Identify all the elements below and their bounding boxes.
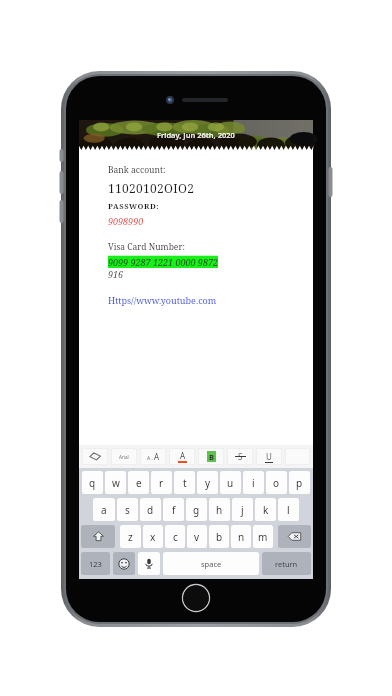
staticText: return [275,559,298,569]
button[interactable]: i [243,471,264,494]
staticText: PASSWORD: [108,201,160,211]
staticText: i [252,476,255,490]
staticText: j [241,503,244,517]
button[interactable]: z [120,525,141,548]
staticText: Https//www.youtube.com [108,294,217,306]
staticText: a [101,503,107,517]
button[interactable]: m [253,525,273,548]
staticText: g [193,503,200,517]
staticText: x [150,530,156,544]
button[interactable]: f [163,498,184,521]
button[interactable]: Space [163,552,259,575]
button[interactable]: w [105,471,126,494]
button[interactable]: Text colour [169,448,195,465]
staticText: 9098990 [108,215,144,227]
staticText: Bank account: [108,164,166,176]
staticText: h [216,503,223,517]
staticText: b [216,530,223,544]
button[interactable]: k [255,498,276,521]
staticText: ~ [151,457,154,462]
staticText: z [128,530,133,544]
button[interactable]: t [174,471,195,494]
button[interactable]: Voice input [138,552,160,575]
staticText: n [238,530,245,544]
button[interactable]: Emoji [113,552,135,575]
button[interactable]: Highlight [198,448,224,465]
button[interactable]: x [143,525,163,548]
staticText: Friday, Jun 26th, 2020 [157,130,235,140]
button[interactable]: u [220,471,241,494]
staticText: o [273,476,280,490]
staticText: space [201,559,222,569]
staticText: u [227,476,234,490]
staticText: w [112,476,120,490]
button[interactable]: v [187,525,207,548]
staticText: l [287,503,290,517]
staticText: t [183,476,187,490]
button[interactable]: o [266,471,287,494]
button[interactable]: Text size [140,448,166,465]
staticText: Arial [119,454,129,460]
button[interactable]: Return [262,552,311,575]
staticText: v [194,530,200,544]
button[interactable]: l [278,498,299,521]
staticText: m [258,530,268,544]
staticText: 916 [108,268,124,280]
staticText: f [172,503,176,517]
button[interactable]: q [82,471,103,494]
staticText: A [154,451,160,462]
button[interactable]: Numbers and symbols [81,552,110,575]
staticText: d [147,503,154,517]
staticText: S [238,451,243,462]
button[interactable]: s [117,498,138,521]
staticText: 123 [89,559,102,569]
button[interactable]: g [186,498,207,521]
staticText: B [209,452,214,462]
button[interactable]: h [209,498,230,521]
button[interactable]: r [151,471,172,494]
button[interactable]: n [231,525,251,548]
staticText: 9099 9287 1221 0000 9872 [108,256,218,268]
button[interactable]: b [209,525,229,548]
button[interactable]: Strikethrough [227,448,253,465]
button[interactable]: p [289,471,310,494]
staticText: y [205,476,211,490]
button[interactable]: y [197,471,218,494]
staticText: k [263,503,269,517]
button[interactable]: Backspace [278,525,311,548]
button[interactable]: More options [285,448,310,465]
button[interactable]: Shift [81,525,115,548]
staticText: r [159,476,164,490]
staticText: e [136,476,142,490]
staticText: q [89,476,96,490]
staticText: A [180,450,186,461]
staticText: Visa Card Number: [108,241,185,253]
staticText: c [173,530,178,544]
staticText: A [147,455,151,462]
staticText: s [125,503,130,517]
staticText: 11020102OIO2 [108,180,195,196]
button[interactable]: Eraser [82,448,108,465]
button[interactable]: c [165,525,185,548]
staticText: p [296,476,303,490]
staticText: U [266,451,272,462]
button[interactable]: Font family Arial [111,448,137,465]
button[interactable]: a [93,498,115,521]
button[interactable]: e [128,471,149,494]
button[interactable]: Underline [256,448,282,465]
button[interactable]: d [140,498,161,521]
button[interactable]: j [232,498,253,521]
